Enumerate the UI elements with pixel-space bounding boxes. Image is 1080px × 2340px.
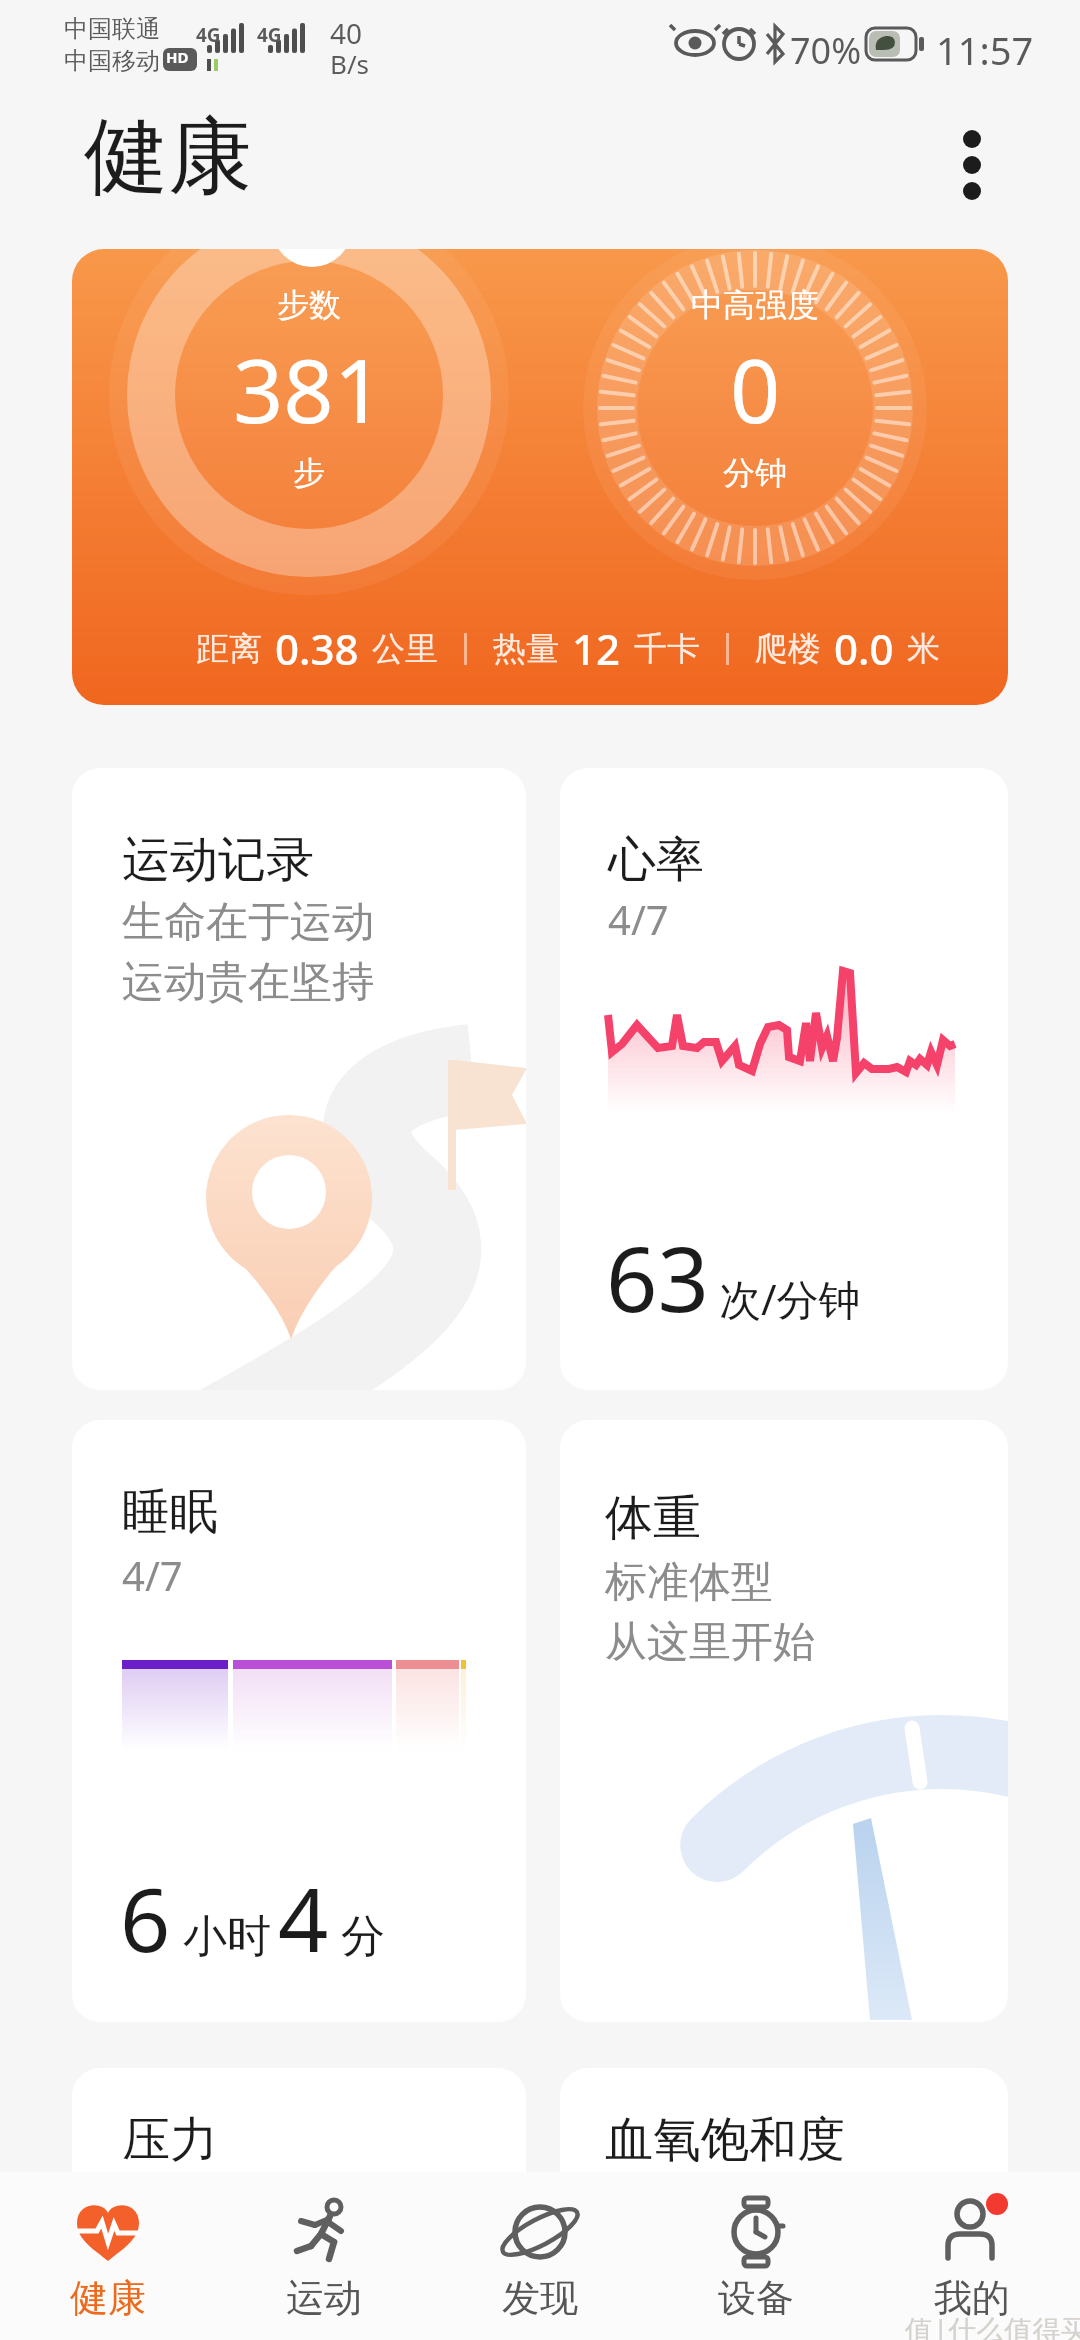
- staticText: 4/7: [122, 1548, 183, 1602]
- button[interactable]: 健康: [0, 2172, 216, 2340]
- staticText: 0: [730, 329, 781, 449]
- staticText: 运动: [286, 2274, 362, 2322]
- staticText: 热量: [493, 628, 559, 670]
- staticText: 中高强度: [691, 285, 819, 325]
- staticText: 381: [233, 329, 385, 449]
- staticText: 4/7: [608, 892, 669, 946]
- button[interactable]: 我的: [864, 2172, 1080, 2340]
- staticText: 设备: [718, 2274, 794, 2322]
- staticText: 从这里开始: [605, 1616, 815, 1669]
- staticText: 爬楼: [755, 628, 821, 670]
- staticText: 4G: [196, 22, 221, 48]
- staticText: 中国移动: [64, 46, 160, 76]
- staticText: 公里: [372, 628, 438, 670]
- button[interactable]: 发现: [432, 2172, 648, 2340]
- staticText: 血氧饱和度: [605, 2110, 845, 2170]
- staticText: 分: [341, 1909, 385, 1964]
- staticText: 分钟: [723, 453, 787, 493]
- staticText: 发现: [502, 2274, 578, 2322]
- staticText: 步: [293, 453, 325, 493]
- staticText: 标准体型: [605, 1556, 773, 1609]
- staticText: 压力: [122, 2110, 218, 2170]
- staticText: 运动贵在坚持: [122, 956, 374, 1009]
- staticText: 11:57: [936, 24, 1034, 76]
- staticText: 12: [572, 620, 621, 677]
- button[interactable]: 运动: [216, 2172, 432, 2340]
- staticText: 生命在于运动: [122, 896, 374, 949]
- staticText: 体重: [605, 1488, 701, 1548]
- staticText: 健康: [84, 104, 252, 210]
- staticText: 0.38: [275, 620, 359, 677]
- button[interactable]: 心率: [560, 768, 1008, 1390]
- staticText: 63: [606, 1216, 709, 1339]
- staticText: 4G: [257, 22, 282, 48]
- staticText: 6: [120, 1858, 171, 1978]
- staticText: 步数: [277, 285, 341, 325]
- staticText: 我的: [934, 2274, 1010, 2322]
- button[interactable]: 步数: [72, 249, 1008, 705]
- button[interactable]: 体重: [560, 1420, 1008, 2022]
- staticText: 健康: [70, 2274, 146, 2322]
- staticText: B/s: [330, 46, 370, 81]
- staticText: 40: [330, 14, 363, 52]
- staticText: 次/分钟: [719, 1270, 861, 1327]
- staticText: 运动记录: [122, 830, 314, 890]
- staticText: 睡眠: [122, 1482, 218, 1542]
- staticText: 米: [907, 628, 940, 670]
- button[interactable]: [944, 110, 1000, 220]
- staticText: 距离: [196, 628, 262, 670]
- staticText: 小时: [183, 1909, 271, 1964]
- staticText: 千卡: [634, 628, 700, 670]
- button[interactable]: 睡眠: [72, 1420, 526, 2022]
- staticText: 4: [278, 1858, 329, 1978]
- staticText: 70%: [790, 26, 862, 75]
- staticText: 值|什么值得买: [905, 2310, 1080, 2340]
- button[interactable]: 设备: [648, 2172, 864, 2340]
- button[interactable]: 血氧饱和度: [560, 2068, 1008, 2340]
- button[interactable]: 运动记录: [72, 768, 526, 1390]
- staticText: 0.0: [834, 620, 894, 677]
- button[interactable]: 压力: [72, 2068, 526, 2340]
- staticText: 心率: [608, 830, 704, 890]
- staticText: HD: [166, 47, 189, 67]
- staticText: 中国联通: [64, 14, 160, 44]
